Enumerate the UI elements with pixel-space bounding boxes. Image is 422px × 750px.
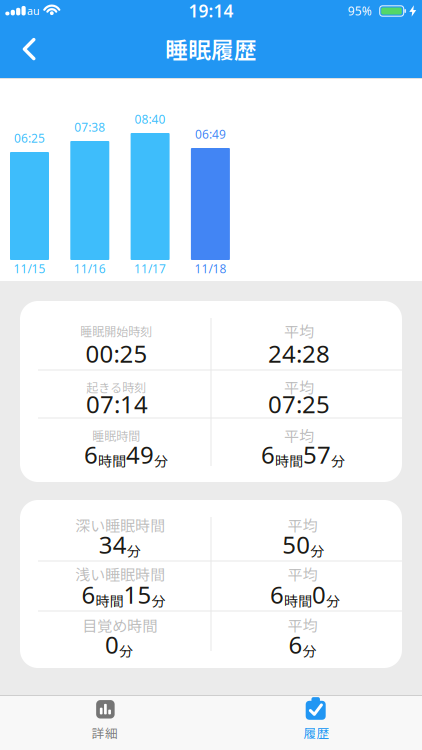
staticText: 0分 [105,629,133,660]
staticText: 11/17 [134,260,166,276]
staticText: 11/18 [194,260,226,276]
staticText: 00:25 [85,338,147,369]
staticText: 平均 [287,614,317,636]
staticText: 平均 [284,425,314,446]
staticText: 24:28 [268,338,330,369]
staticText: 95% [348,3,372,19]
staticText: 6時間49分 [84,439,168,470]
staticText: 6時間0分 [270,579,340,610]
staticText: 睡眠履歴 [165,32,257,65]
staticText: 07:25 [268,388,330,420]
staticText: 08:40 [135,111,166,127]
staticText: 目覚め時間 [82,614,157,636]
staticText: 07:14 [86,388,148,420]
staticText: 睡眠開始時刻 [80,322,152,340]
staticText: 平均 [287,514,317,536]
staticText: 11/16 [74,260,106,276]
button[interactable]: 詳細 [0,695,211,750]
staticText: 平均 [287,563,317,585]
staticText: 34分 [99,529,141,560]
button[interactable]: 履歴 [211,695,422,750]
button[interactable] [6,32,50,66]
staticText: 詳細 [92,723,118,742]
staticText: 07:38 [74,119,105,135]
staticText: 履歴 [303,723,329,742]
staticText: 平均 [284,376,314,398]
staticText: 06:25 [14,130,45,146]
staticText: 起きる時刻 [86,378,146,396]
staticText: 6分 [289,629,317,660]
staticText: au [27,4,40,18]
staticText: 06:49 [195,126,226,142]
staticText: 平均 [284,320,314,342]
staticText: 浅い睡眠時間 [75,563,165,585]
staticText: 6時間15分 [81,579,165,610]
staticText: 6時間57分 [261,439,345,470]
staticText: 11/15 [13,260,45,276]
staticText: 深い睡眠時間 [75,514,165,536]
staticText: 50分 [282,529,324,560]
staticText: 睡眠時間 [92,427,140,444]
staticText: 19:14 [188,0,233,22]
